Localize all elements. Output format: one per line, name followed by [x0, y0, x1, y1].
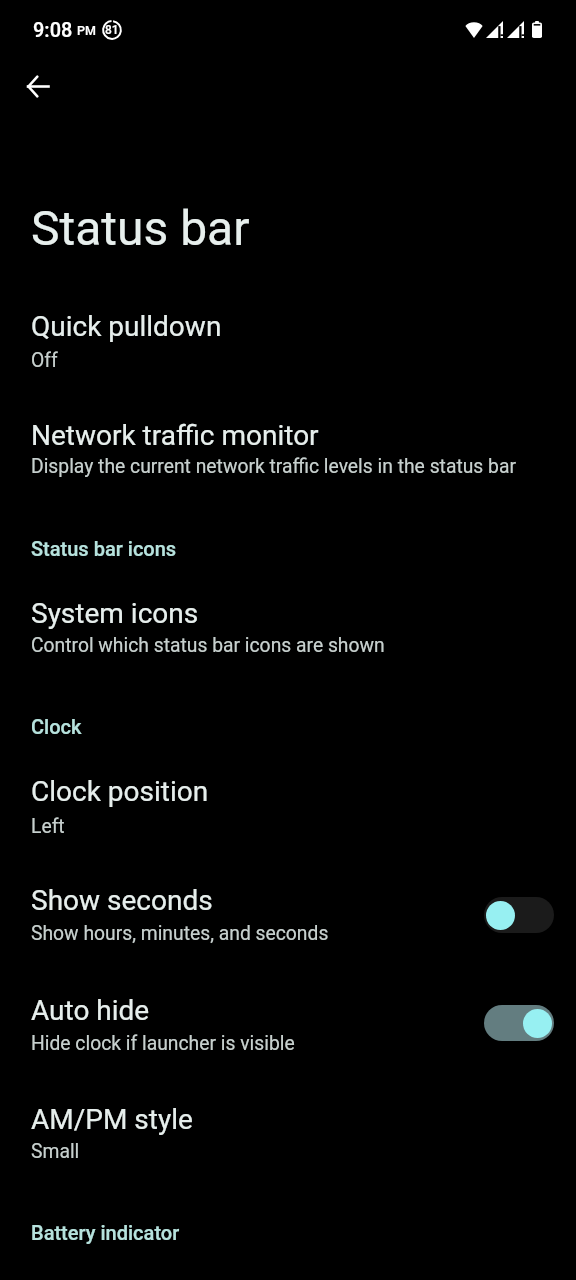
- staticText: AM/PM style: [31, 1103, 193, 1136]
- button[interactable]: Auto hide: [0, 968, 576, 1078]
- staticText: Off: [31, 349, 58, 372]
- staticText: Battery indicator: [31, 1221, 180, 1244]
- button[interactable]: Navigate up: [6, 56, 69, 117]
- staticText: PM: [77, 23, 96, 38]
- staticText: System icons: [31, 597, 199, 630]
- staticText: Status bar: [31, 200, 250, 256]
- button[interactable]: Network traffic monitor: [0, 394, 576, 500]
- button[interactable]: Show seconds, off: [484, 897, 554, 933]
- staticText: 81: [105, 23, 119, 37]
- staticText: Quick pulldown: [31, 310, 222, 343]
- staticText: Control which status bar icons are shown: [31, 634, 385, 657]
- staticText: Clock: [31, 715, 82, 738]
- staticText: 9:08: [33, 18, 73, 41]
- staticText: Hide clock if launcher is visible: [31, 1032, 295, 1055]
- staticText: Status bar icons: [31, 537, 177, 560]
- staticText: Small: [31, 1140, 80, 1163]
- button[interactable]: Auto hide, on: [484, 1005, 554, 1041]
- staticText: Auto hide: [31, 994, 150, 1027]
- staticText: Left: [31, 815, 65, 838]
- button[interactable]: Show seconds: [0, 858, 576, 968]
- staticText: Show seconds: [31, 884, 213, 917]
- button[interactable]: AM/PM style: [0, 1078, 576, 1186]
- staticText: Network traffic monitor: [31, 419, 319, 452]
- staticText: Clock position: [31, 775, 209, 808]
- button[interactable]: Clock position: [0, 750, 576, 858]
- button[interactable]: System icons: [0, 572, 576, 678]
- button[interactable]: Quick pulldown: [0, 286, 576, 394]
- staticText: Display the current network traffic leve…: [31, 455, 516, 478]
- staticText: Show hours, minutes, and seconds: [31, 922, 329, 945]
